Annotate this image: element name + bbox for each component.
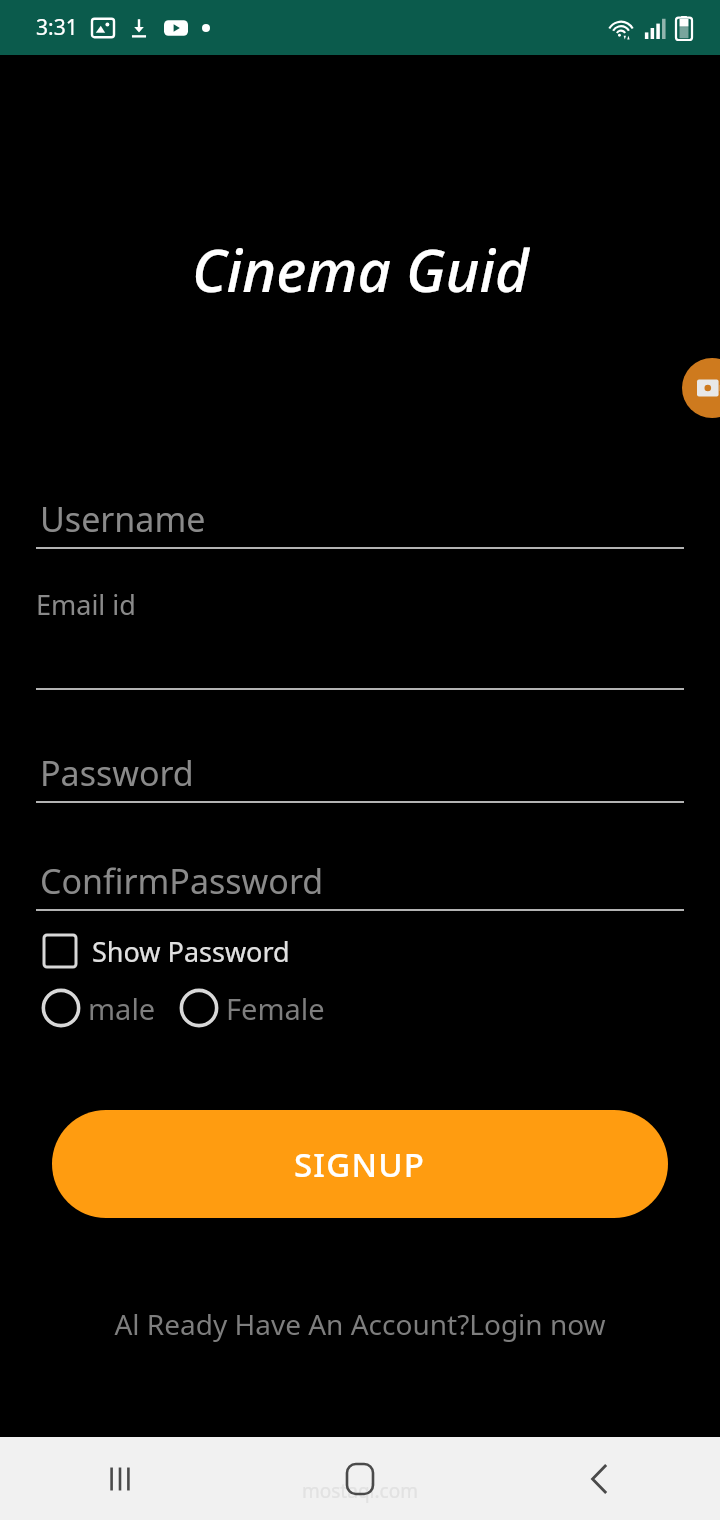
staticText: Show Password	[92, 933, 290, 970]
staticText: mostaql.com	[302, 1478, 418, 1504]
button[interactable]: Recent apps	[0, 1437, 240, 1520]
staticText: Cinema Guid	[192, 230, 529, 309]
button[interactable]: Password	[36, 750, 684, 803]
staticText: Email id	[36, 586, 136, 623]
button[interactable]: Show Password	[40, 931, 290, 971]
button[interactable]: Username	[36, 496, 684, 549]
button[interactable]: Home	[240, 1437, 480, 1520]
staticText: 3:31	[36, 13, 78, 42]
button[interactable]: SIGNUP	[52, 1110, 668, 1218]
staticText: SIGNUP	[294, 1142, 426, 1187]
staticText: Al Ready Have An Account?Login now	[114, 1305, 606, 1343]
staticText: Female	[226, 989, 325, 1028]
button[interactable]: Female	[178, 987, 325, 1029]
staticText: male	[88, 989, 156, 1028]
staticText: Password	[40, 750, 194, 796]
staticText: ConfirmPassword	[40, 858, 324, 904]
button[interactable]: Email id	[36, 586, 684, 690]
button[interactable]: Back	[480, 1437, 720, 1520]
button[interactable]: Al Ready Have An Account?Login now	[0, 1305, 720, 1343]
staticText: Username	[40, 496, 206, 542]
button[interactable]: ConfirmPassword	[36, 858, 684, 911]
button[interactable]: Screen recorder	[682, 358, 720, 418]
button[interactable]: male	[40, 987, 156, 1029]
